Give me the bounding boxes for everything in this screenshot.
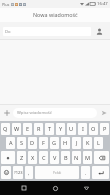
button[interactable]: ,: [25, 166, 33, 179]
staticText: I: [82, 125, 84, 133]
button[interactable]: K: [83, 137, 92, 149]
button[interactable]: T: [45, 123, 54, 135]
staticText: D: [30, 139, 35, 147]
button[interactable]: ?123: [13, 166, 23, 179]
staticText: U: [69, 125, 74, 133]
button[interactable]: Emoji: [1, 166, 11, 179]
button[interactable]: .: [81, 166, 90, 179]
staticText: G: [52, 139, 57, 147]
staticText: B: [64, 154, 68, 162]
button[interactable]: X: [28, 151, 37, 164]
staticText: L: [97, 139, 100, 147]
staticText: O: [91, 125, 96, 133]
staticText: Y: [59, 125, 63, 133]
staticText: Nowa wiadomość: [33, 11, 78, 18]
staticText: V: [53, 154, 57, 162]
staticText: 16:47: [97, 1, 108, 7]
staticText: N: [74, 154, 79, 162]
button[interactable]: Recents: [17, 181, 31, 195]
staticText: W: [14, 125, 20, 133]
staticText: F: [42, 139, 45, 147]
button[interactable]: Home: [48, 181, 62, 195]
staticText: M: [85, 154, 91, 162]
button[interactable]: O: [89, 123, 98, 135]
staticText: C: [42, 154, 46, 162]
button[interactable]: Wpisz wiadomość: [13, 108, 97, 118]
staticText: R: [37, 125, 41, 133]
staticText: H: [63, 139, 68, 147]
button[interactable]: G: [50, 137, 59, 149]
staticText: T: [48, 125, 52, 133]
button[interactable]: Send: [97, 106, 110, 119]
button[interactable]: I: [78, 123, 87, 135]
button[interactable]: C: [39, 151, 48, 164]
staticText: J: [76, 139, 78, 147]
button[interactable]: B: [61, 151, 70, 164]
staticText: ,: [28, 170, 30, 176]
staticText: Q: [3, 125, 8, 133]
button[interactable]: R: [34, 123, 43, 135]
staticText: Z: [20, 154, 24, 162]
staticText: K: [86, 139, 90, 147]
button[interactable]: Do: [3, 27, 91, 36]
button[interactable]: W: [12, 123, 21, 135]
button[interactable]: Y: [56, 123, 65, 135]
staticText: S: [20, 139, 24, 147]
button[interactable]: Polski: [35, 166, 79, 179]
button[interactable]: N: [72, 151, 81, 164]
button[interactable]: H: [61, 137, 70, 149]
staticText: E: [26, 125, 30, 133]
staticText: ?123: [14, 170, 23, 175]
button[interactable]: Q: [1, 123, 10, 135]
button[interactable]: Backspace: [94, 151, 109, 164]
staticText: P: [103, 125, 107, 133]
staticText: .: [85, 170, 87, 176]
staticText: Do: [5, 29, 11, 35]
staticText: Polski: [53, 171, 62, 175]
button[interactable]: M: [83, 151, 92, 164]
button[interactable]: E: [23, 123, 32, 135]
button[interactable]: D: [28, 137, 37, 149]
button[interactable]: V: [50, 151, 59, 164]
button[interactable]: Z: [17, 151, 26, 164]
button[interactable]: Back: [79, 181, 93, 195]
button[interactable]: P: [100, 123, 109, 135]
button[interactable]: U: [67, 123, 76, 135]
button[interactable]: A: [6, 137, 15, 149]
button[interactable]: F: [39, 137, 48, 149]
button[interactable]: J: [72, 137, 81, 149]
button[interactable]: L: [94, 137, 103, 149]
staticText: Wpisz wiadomość: [17, 110, 52, 116]
staticText: Plus: [2, 2, 10, 7]
button[interactable]: Enter: [92, 166, 109, 179]
staticText: X: [31, 154, 35, 162]
staticText: A: [9, 139, 13, 147]
button[interactable]: Shift: [1, 151, 15, 164]
button[interactable]: Choose contact: [93, 25, 106, 38]
button[interactable]: Add attachment: [0, 106, 13, 119]
button[interactable]: S: [17, 137, 26, 149]
